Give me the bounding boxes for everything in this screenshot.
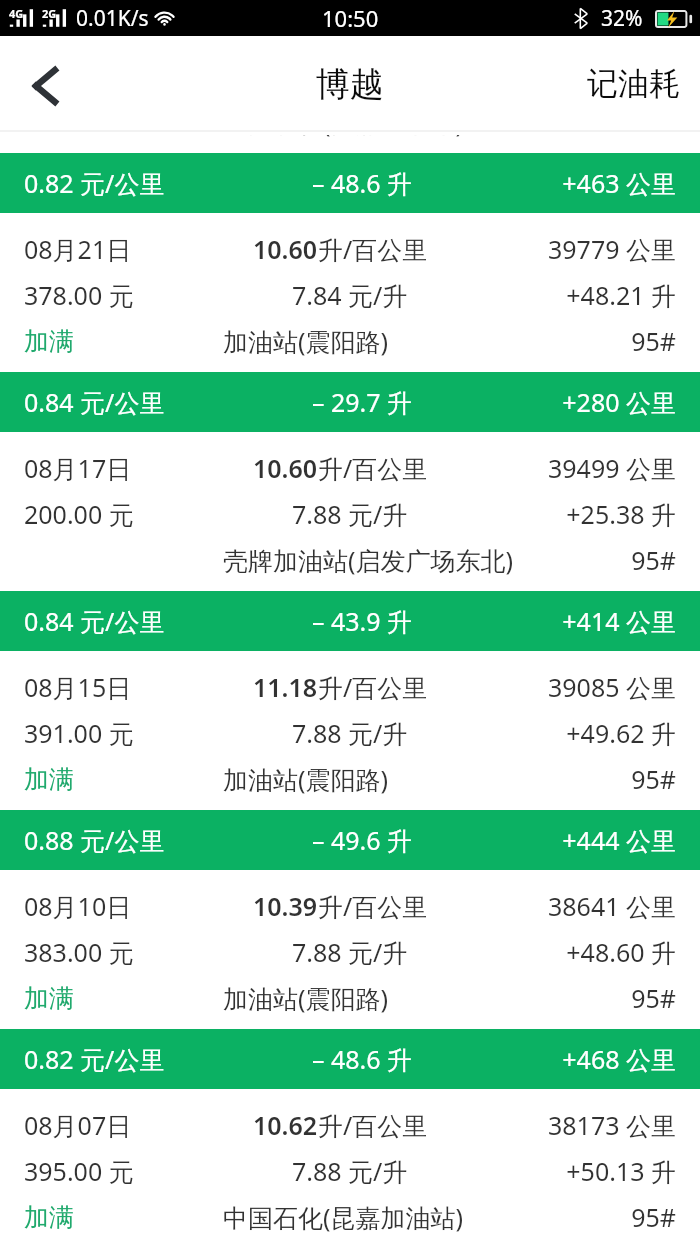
- staticText: 升/百公里: [318, 670, 428, 704]
- staticText: 10.60: [253, 451, 318, 485]
- staticText: 39085 公里: [547, 670, 676, 704]
- staticText: 0.84 元/公里: [24, 604, 165, 638]
- staticText: 升/百公里: [318, 1108, 428, 1142]
- button[interactable]: 0.84 元/公里: [0, 591, 700, 810]
- staticText: 95#: [631, 324, 676, 358]
- staticText: 32%: [601, 4, 643, 33]
- staticText: 38173 公里: [547, 1108, 676, 1142]
- staticText: 加油站(震阳路): [223, 981, 389, 1015]
- staticText: 壳牌加油站(启发广场东北): [223, 543, 514, 577]
- staticText: +50.13 升: [566, 1154, 676, 1188]
- staticText: 加油站(震阳路): [223, 324, 389, 358]
- button[interactable]: 0.82 元/公里: [0, 153, 700, 372]
- staticText: 7.88 元/升: [292, 935, 408, 969]
- staticText: 加满: [24, 764, 74, 795]
- staticText: +49.62 升: [566, 716, 676, 750]
- staticText: 08月17日: [24, 451, 132, 485]
- staticText: 7.84 元/升: [292, 278, 408, 312]
- staticText: 加满: [24, 326, 74, 357]
- staticText: 95#: [631, 762, 676, 796]
- staticText: 10:50: [322, 3, 379, 33]
- button[interactable]: 记油耗: [557, 44, 700, 127]
- staticText: +463 公里: [562, 166, 676, 200]
- staticText: 7.88 元/升: [292, 497, 408, 531]
- staticText: 391.00 元: [24, 716, 134, 750]
- staticText: 39779 公里: [547, 232, 676, 266]
- staticText: 08月07日: [24, 1108, 132, 1142]
- staticText: 中国石化(昆嘉加油站): [223, 1200, 464, 1234]
- staticText: 08月21日: [24, 232, 132, 266]
- staticText: 395.00 元: [24, 1154, 134, 1188]
- staticText: 378.00 元: [24, 278, 134, 312]
- staticText: 中国石化(昆嘉加油站): [223, 135, 464, 139]
- staticText: 11.18: [253, 670, 318, 704]
- staticText: 08月15日: [24, 670, 132, 704]
- staticText: – 43.9 升: [312, 604, 413, 638]
- staticText: +48.21 升: [566, 278, 676, 312]
- staticText: +414 公里: [562, 604, 676, 638]
- button[interactable]: 0.88 元/公里: [0, 810, 700, 1029]
- staticText: +444 公里: [562, 823, 676, 857]
- staticText: 95#: [631, 1200, 676, 1234]
- staticText: 10.39: [253, 889, 318, 923]
- staticText: – 48.6 升: [312, 166, 413, 200]
- staticText: +468 公里: [562, 1042, 676, 1076]
- staticText: 383.00 元: [24, 935, 134, 969]
- staticText: 记油耗: [587, 64, 680, 103]
- button[interactable]: Back: [0, 41, 90, 131]
- staticText: 2G: [42, 6, 57, 21]
- staticText: – 29.7 升: [312, 385, 413, 419]
- staticText: +280 公里: [562, 385, 676, 419]
- staticText: 加满: [24, 1202, 74, 1233]
- staticText: 博越: [316, 63, 384, 106]
- staticText: 升/百公里: [318, 889, 428, 923]
- staticText: 200.00 元: [24, 497, 134, 531]
- staticText: 08月10日: [24, 889, 132, 923]
- staticText: +25.38 升: [566, 497, 676, 531]
- staticText: 0.01K/s: [76, 4, 149, 33]
- staticText: – 49.6 升: [312, 823, 413, 857]
- staticText: 升/百公里: [318, 451, 428, 485]
- staticText: 38641 公里: [547, 889, 676, 923]
- staticText: – 48.6 升: [312, 1042, 413, 1076]
- staticText: 加油站(震阳路): [223, 762, 389, 796]
- button[interactable]: 0.82 元/公里: [0, 1029, 700, 1244]
- staticText: 7.88 元/升: [292, 1154, 408, 1188]
- button[interactable]: 0.84 元/公里: [0, 372, 700, 591]
- staticText: 0.82 元/公里: [24, 166, 165, 200]
- staticText: 10.62: [253, 1108, 318, 1142]
- staticText: 7.88 元/升: [292, 716, 408, 750]
- staticText: 10.60: [253, 232, 318, 266]
- staticText: +48.60 升: [566, 935, 676, 969]
- staticText: 0.88 元/公里: [24, 823, 165, 857]
- staticText: 95#: [631, 981, 676, 1015]
- staticText: 39499 公里: [547, 451, 676, 485]
- staticText: 升/百公里: [318, 232, 428, 266]
- staticText: 0.84 元/公里: [24, 385, 165, 419]
- staticText: 95#: [631, 543, 676, 577]
- staticText: 0.82 元/公里: [24, 1042, 165, 1076]
- button[interactable]: 0.82 元/公里: [0, 135, 700, 153]
- staticText: 4G: [9, 6, 24, 21]
- staticText: 加满: [24, 983, 74, 1014]
